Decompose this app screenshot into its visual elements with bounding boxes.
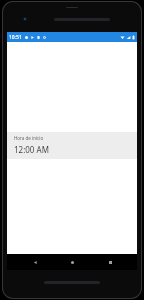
button[interactable]: Back [25,254,45,270]
staticText: 10:51 [9,34,22,41]
staticText: Hora de inicio [14,135,44,141]
button[interactable]: Hora de inicio [7,132,137,159]
button[interactable]: Home [62,254,82,270]
staticText: 12:00 AM [14,144,49,155]
button[interactable]: Recent apps [100,254,120,270]
